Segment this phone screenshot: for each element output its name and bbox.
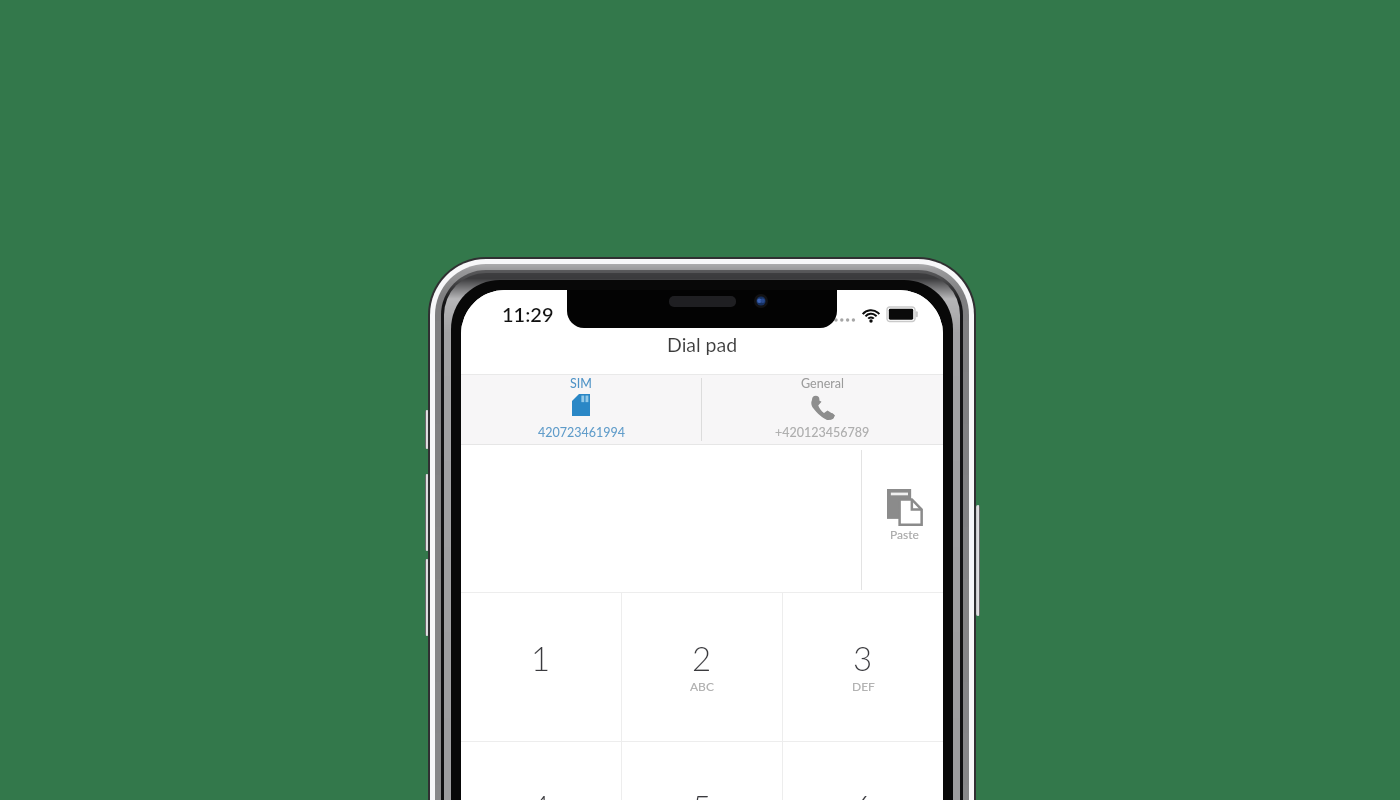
staticText: 1 (531, 638, 551, 678)
staticText: 5 (692, 787, 712, 800)
staticText: Dial pad (667, 333, 738, 356)
staticText: Paste (890, 527, 919, 541)
button[interactable]: 3 (783, 593, 943, 741)
button[interactable]: 1 (461, 593, 621, 741)
button[interactable]: 5 (622, 742, 782, 800)
button[interactable]: 6 (783, 742, 943, 800)
staticText: 4 (531, 787, 551, 800)
button[interactable]: Paste (861, 445, 943, 592)
staticText: DEF (852, 679, 875, 693)
staticText: 420723461994 (538, 425, 625, 440)
staticText: 3 (853, 638, 873, 678)
staticText: 2 (692, 638, 712, 678)
staticText: 6 (853, 787, 873, 800)
button[interactable]: 2 (622, 593, 782, 741)
staticText: SIM (570, 376, 592, 391)
button[interactable]: General (702, 375, 943, 444)
button[interactable]: SIM (461, 375, 701, 444)
staticText: 11:29 (502, 302, 554, 326)
button[interactable]: 4 (461, 742, 621, 800)
staticText: General (801, 376, 844, 391)
staticText: ABC (690, 679, 714, 693)
staticText: +420123456789 (775, 425, 870, 440)
